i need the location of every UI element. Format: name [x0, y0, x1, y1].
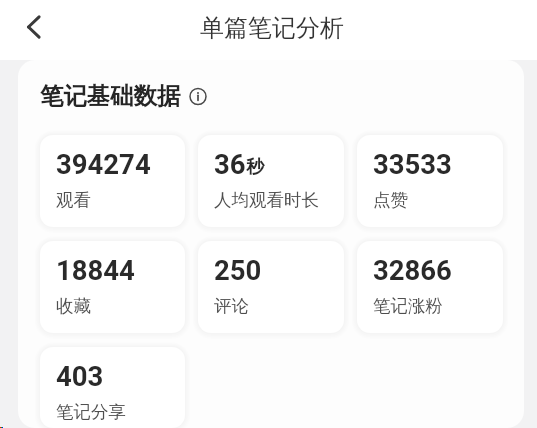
button[interactable]: 33533 [357, 135, 503, 227]
button[interactable]: 32866 [357, 241, 503, 333]
staticText: 评论 [214, 295, 249, 317]
staticText: 点赞 [373, 189, 408, 211]
button[interactable]: 250 [198, 241, 344, 333]
staticText: 笔记涨粉 [373, 295, 443, 317]
staticText: 收藏 [56, 295, 91, 317]
staticText: 人均观看时长 [214, 189, 319, 211]
button[interactable]: 36 [198, 135, 344, 227]
button[interactable]: 18844 [40, 241, 185, 333]
staticText: 403 [56, 360, 104, 392]
staticText: 单篇笔记分析 [200, 13, 344, 43]
button[interactable]: 403 [40, 347, 185, 428]
button[interactable]: Info [187, 85, 209, 107]
staticText: 394274 [56, 148, 151, 180]
staticText: 32866 [373, 254, 452, 286]
button[interactable]: Back [10, 8, 54, 52]
staticText: 观看 [56, 189, 91, 211]
staticText: 33533 [373, 148, 452, 180]
staticText: 18844 [56, 254, 135, 286]
staticText: 36 [214, 148, 246, 180]
staticText: 250 [214, 254, 262, 286]
staticText: 笔记分享 [56, 401, 126, 423]
button[interactable]: 394274 [40, 135, 185, 227]
staticText: 秒 [246, 156, 264, 179]
staticText: 笔记基础数据 [40, 81, 181, 110]
